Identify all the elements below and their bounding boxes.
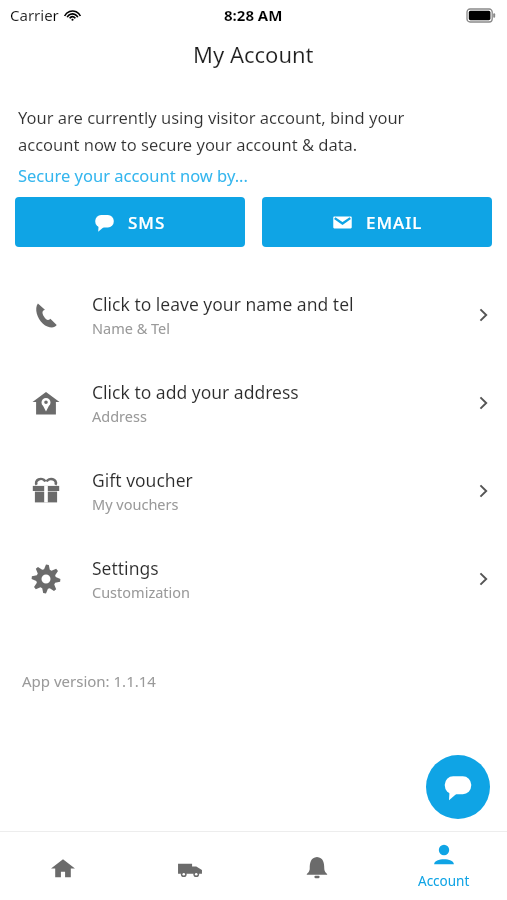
staticText: My Account — [193, 39, 314, 69]
staticText: Your are currently using visitor account… — [18, 106, 405, 128]
staticText: App version: 1.1.14 — [22, 671, 156, 691]
staticText: Click to leave your name and tel — [92, 292, 354, 316]
button[interactable]: Settings — [0, 535, 507, 623]
staticText: Account — [418, 872, 470, 890]
staticText: EMAIL — [366, 211, 423, 234]
staticText: Settings — [92, 556, 159, 580]
staticText: Gift voucher — [92, 468, 193, 492]
staticText: Customization — [92, 582, 191, 602]
button[interactable]: EMAIL — [262, 197, 492, 247]
staticText: Carrier — [10, 5, 59, 25]
button[interactable]: Chat — [426, 755, 490, 819]
staticText: 8:28 AM — [224, 5, 283, 25]
button[interactable]: SMS — [15, 197, 245, 247]
button[interactable]: Account — [380, 832, 507, 900]
staticText: My vouchers — [92, 494, 179, 514]
staticText: Click to add your address — [92, 380, 299, 404]
staticText: account now to secure your account & dat… — [18, 133, 358, 155]
staticText: Address — [92, 406, 147, 426]
button[interactable]: Click to leave your name and tel — [0, 271, 507, 359]
button[interactable]: Home — [0, 832, 126, 900]
staticText: Secure your account now by... — [18, 164, 248, 186]
button[interactable]: Secure your account now by... — [18, 164, 248, 186]
staticText: Name & Tel — [92, 318, 171, 338]
button[interactable]: Click to add your address — [0, 359, 507, 447]
button[interactable]: Notifications — [253, 832, 380, 900]
button[interactable]: Gift voucher — [0, 447, 507, 535]
button[interactable]: Delivery — [126, 832, 253, 900]
staticText: SMS — [128, 211, 166, 234]
